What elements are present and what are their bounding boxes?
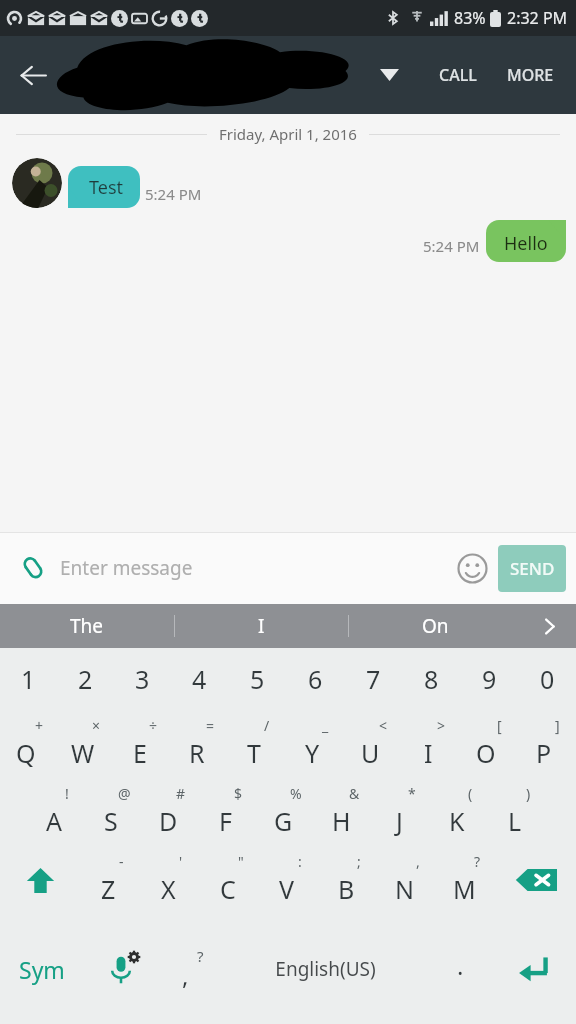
button[interactable]: 6 xyxy=(286,648,344,710)
button[interactable]: ' xyxy=(141,846,201,914)
button[interactable]: Enter xyxy=(492,930,576,1008)
staticText: ; xyxy=(357,852,361,871)
button[interactable]: 9 xyxy=(460,648,518,710)
button[interactable]: 5 xyxy=(228,648,286,710)
staticText: O xyxy=(476,736,496,770)
staticText: 5:24 PM xyxy=(423,236,480,256)
button[interactable]: > xyxy=(402,710,460,778)
button[interactable]: The xyxy=(0,604,174,648)
staticText: & xyxy=(349,784,360,803)
button[interactable]: @ xyxy=(85,778,142,846)
button[interactable]: English(US) xyxy=(222,930,428,1008)
button[interactable]: - xyxy=(81,846,141,914)
button[interactable]: Shift xyxy=(0,846,81,914)
button[interactable]: ? xyxy=(437,846,496,914)
button[interactable]: Enter message xyxy=(60,555,448,581)
button[interactable]: CALL xyxy=(429,54,487,96)
button[interactable]: 4 xyxy=(171,648,228,710)
staticText: G xyxy=(274,804,293,838)
staticText: = xyxy=(206,716,215,735)
button[interactable]: Attach file xyxy=(10,545,56,591)
button[interactable]: ] xyxy=(518,710,576,778)
button[interactable]: 7 xyxy=(344,648,402,710)
staticText: % xyxy=(290,784,302,803)
staticText: × xyxy=(92,716,101,735)
button[interactable]: I xyxy=(175,604,348,648)
staticText: The xyxy=(70,613,104,639)
button[interactable]: _ xyxy=(286,710,344,778)
button[interactable]: ( xyxy=(431,778,489,846)
button[interactable]: " xyxy=(201,846,260,914)
staticText: ÷ xyxy=(149,716,158,735)
button[interactable]: 2 xyxy=(57,648,114,710)
button[interactable]: Emoji xyxy=(448,544,496,592)
staticText: R xyxy=(189,736,205,770)
staticText: Z xyxy=(101,872,116,906)
button[interactable]: Backspace xyxy=(496,846,576,914)
button[interactable]: SEND xyxy=(498,545,566,592)
staticText: ] xyxy=(555,716,560,735)
staticText: 6 xyxy=(308,662,323,696)
staticText: $ xyxy=(234,784,243,803)
button[interactable]: $ xyxy=(199,778,257,846)
staticText: V xyxy=(279,872,295,906)
button[interactable]: 0 xyxy=(518,648,576,710)
button[interactable]: × xyxy=(57,710,114,778)
button[interactable]: * xyxy=(373,778,431,846)
button[interactable]: 1 xyxy=(0,648,57,710)
staticText: - xyxy=(119,852,124,871)
button[interactable]: & xyxy=(315,778,373,846)
staticText: ( xyxy=(468,784,473,803)
staticText: Hello xyxy=(504,231,548,256)
staticText: Friday, April 1, 2016 xyxy=(219,124,357,144)
staticText: : xyxy=(298,852,302,871)
button[interactable]: [ xyxy=(460,710,518,778)
staticText: 2:32 PM xyxy=(507,7,568,29)
button[interactable]: : xyxy=(260,846,319,914)
button[interactable]: On xyxy=(349,604,522,648)
button[interactable]: Expand recipients xyxy=(366,52,412,98)
button[interactable]: / xyxy=(228,710,286,778)
staticText: ! xyxy=(65,784,69,803)
staticText: ' xyxy=(179,852,183,871)
button[interactable]: # xyxy=(142,778,199,846)
button[interactable]: MORE xyxy=(497,54,564,96)
button[interactable]: + xyxy=(0,710,57,778)
staticText: J xyxy=(396,804,403,838)
button[interactable]: Hello xyxy=(486,220,566,262)
staticText: Q xyxy=(16,736,36,770)
staticText: 4 xyxy=(192,662,207,696)
button[interactable]: More suggestions xyxy=(522,604,576,648)
button[interactable]: ÷ xyxy=(114,710,171,778)
button[interactable]: ) xyxy=(489,778,547,846)
staticText: S xyxy=(104,804,118,838)
button[interactable]: ! xyxy=(28,778,85,846)
staticText: 9 xyxy=(482,662,497,696)
staticText: / xyxy=(264,716,270,735)
staticText: Test xyxy=(89,175,124,200)
button[interactable]: Contact photo xyxy=(12,158,62,208)
button[interactable]: ; xyxy=(319,846,378,914)
staticText: [ xyxy=(497,716,502,735)
button[interactable]: ? xyxy=(158,930,222,1008)
button[interactable]: Test xyxy=(68,166,140,208)
button[interactable]: < xyxy=(344,710,402,778)
staticText: C xyxy=(220,872,236,906)
button[interactable]: Voice input xyxy=(84,930,158,1008)
button[interactable]: , xyxy=(378,846,437,914)
button[interactable]: 8 xyxy=(402,648,460,710)
staticText: , xyxy=(416,852,420,871)
button[interactable]: = xyxy=(171,710,228,778)
staticText: # xyxy=(176,784,186,803)
staticText: 1 xyxy=(21,662,36,696)
button[interactable]: Back xyxy=(8,50,58,100)
staticText: On xyxy=(422,613,449,639)
staticText: F xyxy=(219,804,232,838)
staticText: 2 xyxy=(78,662,93,696)
button[interactable]: Sym xyxy=(0,930,84,1008)
staticText: * xyxy=(408,784,416,803)
staticText: K xyxy=(449,804,465,838)
button[interactable]: % xyxy=(257,778,315,846)
button[interactable]: 3 xyxy=(114,648,171,710)
button[interactable]: . xyxy=(428,930,492,1008)
